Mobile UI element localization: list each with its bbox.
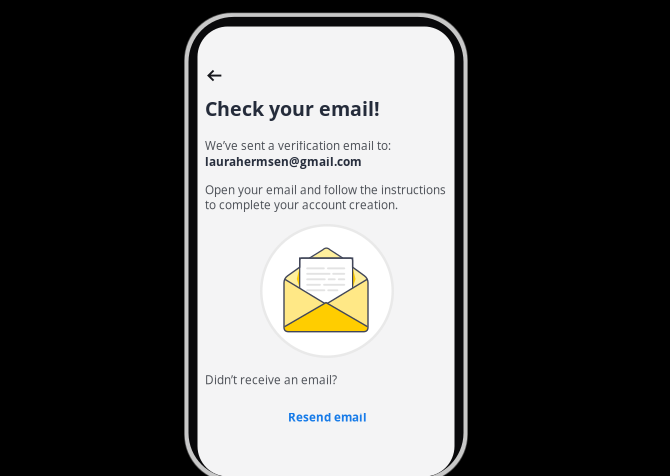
staticText: Resend email [288,409,367,425]
button[interactable]: Resend email [278,406,378,428]
staticText: to complete your account creation. [205,197,398,213]
button[interactable]: Back [202,64,228,88]
staticText: Check your email! [205,95,380,122]
staticText: laurahermsen@gmail.com [205,153,362,169]
staticText: Didn’t receive an email? [205,372,337,388]
staticText: We’ve sent a verification email to: [205,137,391,153]
staticText: Open your email and follow the instructi… [205,182,446,198]
